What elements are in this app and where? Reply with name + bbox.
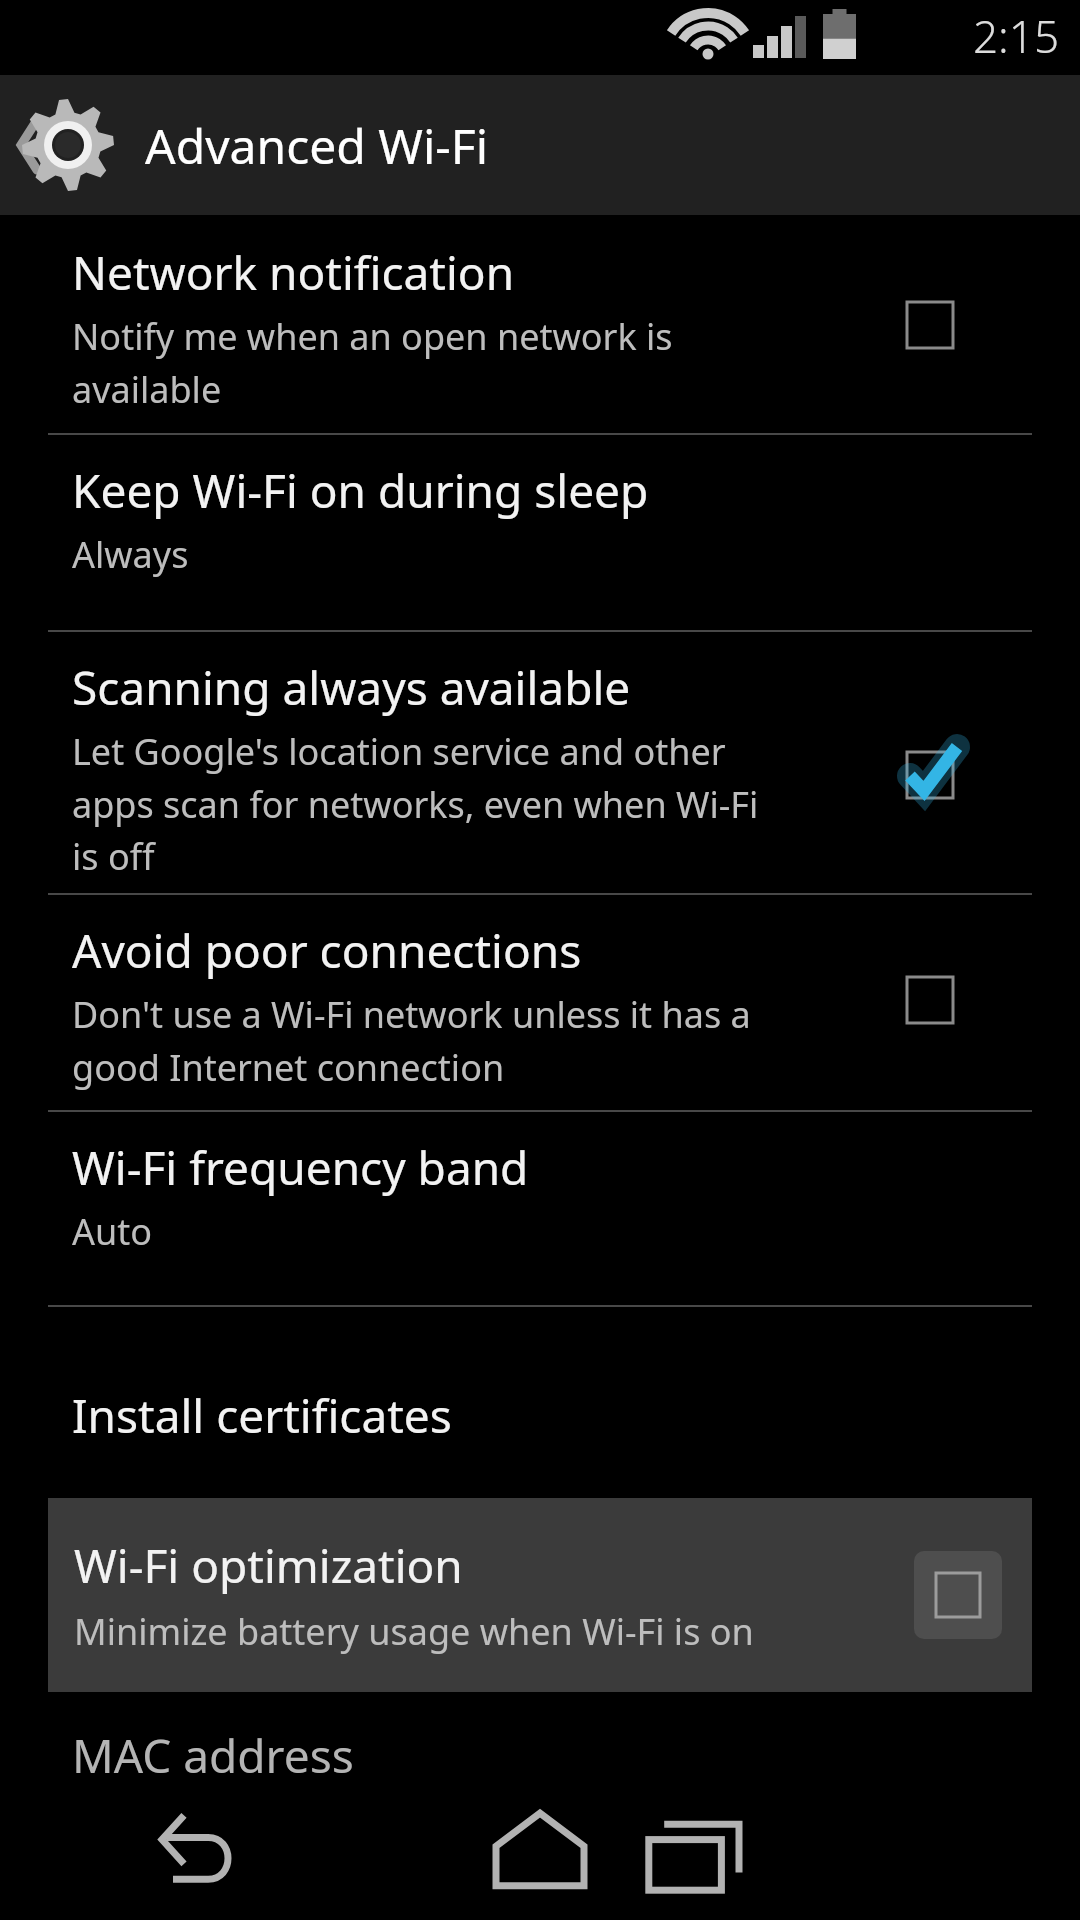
button[interactable]: Avoid poor connections bbox=[0, 893, 1080, 1111]
staticText: Don't use a Wi-Fi network unless it has … bbox=[72, 990, 751, 1091]
staticText: Advanced Wi-Fi bbox=[145, 113, 489, 178]
staticText: Auto bbox=[72, 1207, 153, 1256]
staticText: Wi-Fi frequency band bbox=[72, 1136, 529, 1199]
button[interactable]: Back bbox=[120, 1790, 270, 1920]
button[interactable]: Recent apps bbox=[620, 1790, 770, 1920]
button[interactable]: Install certificates bbox=[0, 1360, 1080, 1470]
staticText: MAC address bbox=[72, 1724, 354, 1787]
staticText: Avoid poor connections bbox=[72, 919, 582, 982]
button[interactable]: Unchecked bbox=[882, 277, 978, 373]
staticText: Keep Wi-Fi on during sleep bbox=[72, 459, 649, 522]
button[interactable]: Scanning always available bbox=[0, 630, 1080, 893]
button[interactable]: Unchecked bbox=[882, 952, 978, 1048]
staticText: Notify me when an open network is availa… bbox=[72, 312, 673, 413]
button[interactable]: Network notification bbox=[0, 215, 1080, 433]
button[interactable]: MAC address bbox=[0, 1700, 1080, 1810]
staticText: 2:15 bbox=[973, 6, 1060, 66]
staticText: Network notification bbox=[72, 241, 515, 304]
button[interactable]: Home bbox=[465, 1790, 615, 1920]
button[interactable]: Navigate up bbox=[0, 75, 120, 215]
button[interactable]: Unchecked bbox=[914, 1551, 1002, 1639]
button[interactable]: Wi-Fi frequency band bbox=[0, 1110, 1080, 1307]
staticText: Scanning always available bbox=[72, 656, 631, 719]
staticText: Install certificates bbox=[72, 1384, 452, 1447]
staticText: Always bbox=[72, 530, 189, 579]
staticText: Minimize battery usage when Wi-Fi is on bbox=[74, 1607, 754, 1656]
staticText: Let Google's location service and other … bbox=[72, 727, 759, 880]
staticText: Wi-Fi optimization bbox=[74, 1534, 463, 1597]
button[interactable]: Wi-Fi optimization bbox=[48, 1498, 1032, 1692]
button[interactable]: Keep Wi-Fi on during sleep bbox=[0, 433, 1080, 630]
button[interactable]: Checked bbox=[882, 727, 978, 823]
